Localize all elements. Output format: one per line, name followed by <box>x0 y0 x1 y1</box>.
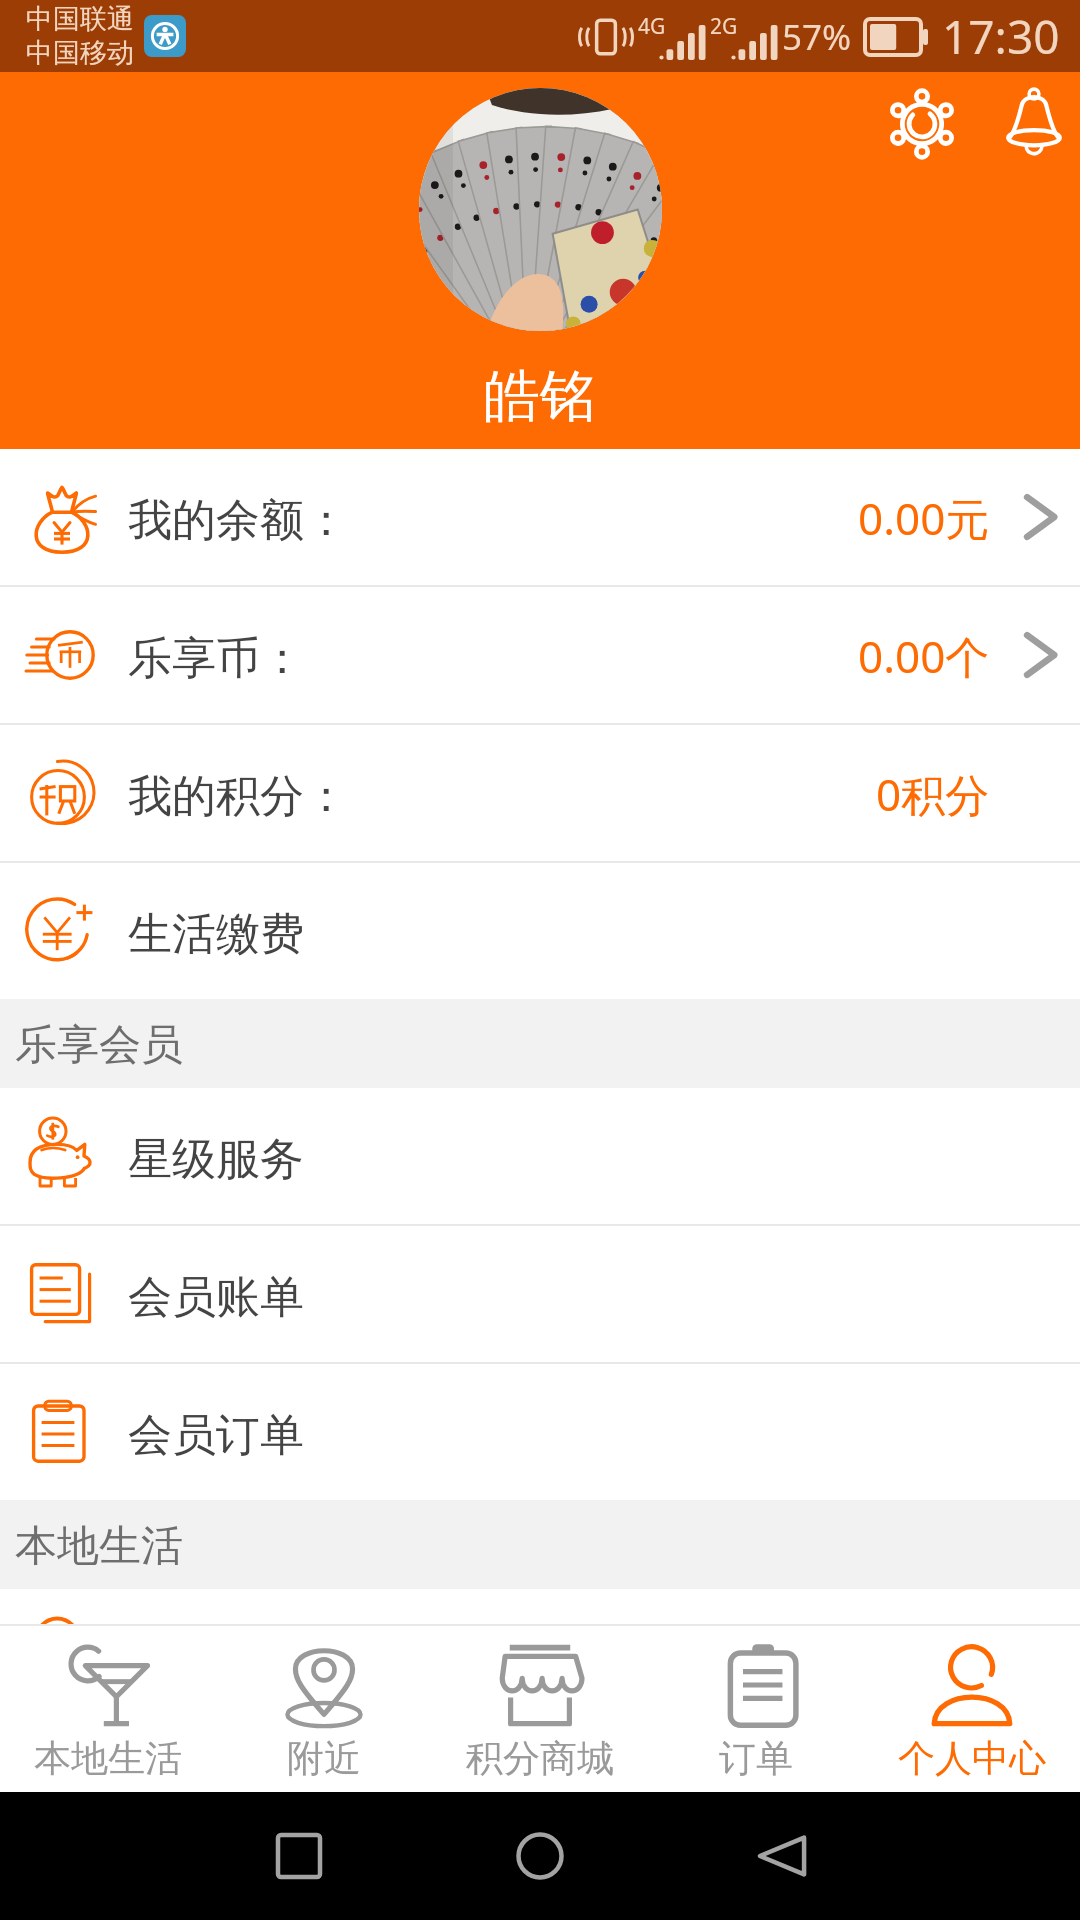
staticText: 个人中心 <box>898 1735 1046 1782</box>
button[interactable]: 生活缴费 <box>0 863 1080 999</box>
staticText: 本地生活 <box>15 1520 183 1573</box>
button[interactable]: 本地生活 <box>0 1626 216 1792</box>
staticText: 乐享币： <box>128 631 304 686</box>
staticText: 会员订单 <box>128 1408 304 1463</box>
button[interactable]: Settings <box>866 68 978 180</box>
staticText: 57% <box>782 13 852 61</box>
staticText: 4G <box>638 12 666 41</box>
button[interactable]: 乐享币： <box>0 587 1080 723</box>
staticText: 皓铭 <box>484 361 596 432</box>
staticText: 我的余额： <box>128 493 348 548</box>
button[interactable]: Back <box>737 1811 827 1901</box>
staticText: 餐饮美食 <box>128 1633 304 1688</box>
button[interactable]: 我的积分： <box>0 725 1080 861</box>
button[interactable]: 附近 <box>216 1626 432 1792</box>
staticText: 乐享会员 <box>15 1019 183 1072</box>
button[interactable]: 会员订单 <box>0 1364 1080 1500</box>
button[interactable]: 个人中心 <box>864 1626 1080 1792</box>
staticText: 17:30 <box>942 5 1060 68</box>
button[interactable]: Notifications <box>978 68 1080 180</box>
button[interactable]: 星级服务 <box>0 1088 1080 1224</box>
staticText: 生活缴费 <box>128 907 304 962</box>
button[interactable]: 订单 <box>648 1626 864 1792</box>
staticText: 会员账单 <box>128 1270 304 1325</box>
button[interactable]: 会员账单 <box>0 1226 1080 1362</box>
staticText: 我的积分： <box>128 769 348 824</box>
button[interactable]: 餐饮美食 <box>0 1589 1080 1725</box>
button[interactable]: 积分商城 <box>432 1626 648 1792</box>
staticText: 积分商城 <box>466 1735 614 1782</box>
staticText: 中国联通 <box>26 2 134 36</box>
staticText: 中国移动 <box>26 36 134 70</box>
button[interactable]: Recents <box>254 1811 344 1901</box>
staticText: 星级服务 <box>128 1132 304 1187</box>
staticText: 附近 <box>287 1735 361 1782</box>
staticText: 本地生活 <box>34 1735 182 1782</box>
button[interactable]: 我的余额： <box>0 449 1080 585</box>
staticText: 0积分 <box>876 764 990 824</box>
staticText: 2G <box>710 12 738 41</box>
staticText: 订单 <box>719 1735 793 1782</box>
button[interactable] <box>419 88 662 331</box>
staticText: 0.00个 <box>858 626 990 686</box>
staticText: 0.00元 <box>858 488 990 548</box>
button[interactable]: Home <box>495 1811 585 1901</box>
